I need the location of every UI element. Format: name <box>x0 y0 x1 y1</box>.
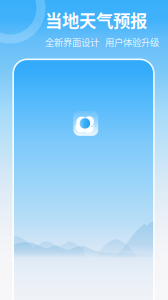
staticText: 当地天气预报 <box>45 7 147 32</box>
staticText: 全新界面设计 用户体验升级 <box>45 35 159 49</box>
